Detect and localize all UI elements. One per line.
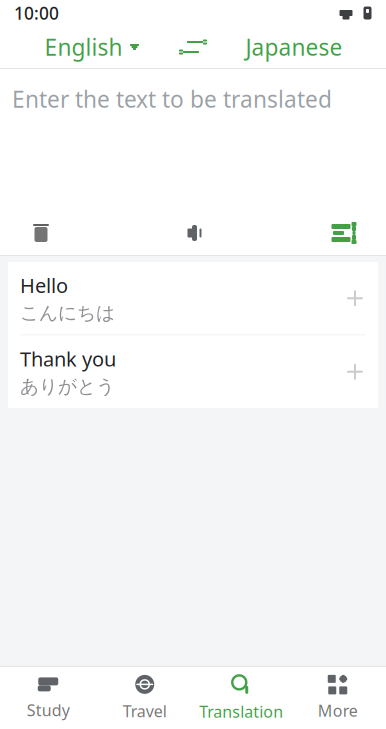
staticText: Travel	[123, 700, 167, 722]
staticText: Enter the text to be translated	[12, 84, 332, 114]
staticText: English	[44, 32, 122, 62]
button[interactable]: Swap languages	[167, 28, 219, 66]
button[interactable]: Translate	[315, 211, 375, 255]
button[interactable]: Listen	[163, 211, 223, 255]
button[interactable]: Clear text	[11, 211, 71, 255]
button[interactable]: English	[17, 24, 167, 70]
staticText: こんにちは	[20, 302, 115, 324]
button[interactable]: Study	[0, 667, 96, 729]
staticText: Translation	[199, 701, 283, 722]
staticText: Hello	[20, 272, 68, 299]
staticText: Japanese	[245, 32, 342, 62]
staticText: More	[318, 700, 358, 721]
button[interactable]: Hello	[8, 262, 378, 334]
staticText: Thank you	[20, 345, 116, 372]
staticText: Study	[27, 699, 70, 721]
button[interactable]: Thank you	[8, 335, 378, 408]
button[interactable]: Japanese	[219, 24, 369, 70]
button[interactable]: Travel	[96, 667, 193, 729]
button[interactable]: More	[289, 667, 386, 729]
staticText: 10:00	[14, 1, 59, 24]
button[interactable]: Translation	[193, 667, 289, 729]
staticText: ありがとう	[20, 375, 115, 398]
